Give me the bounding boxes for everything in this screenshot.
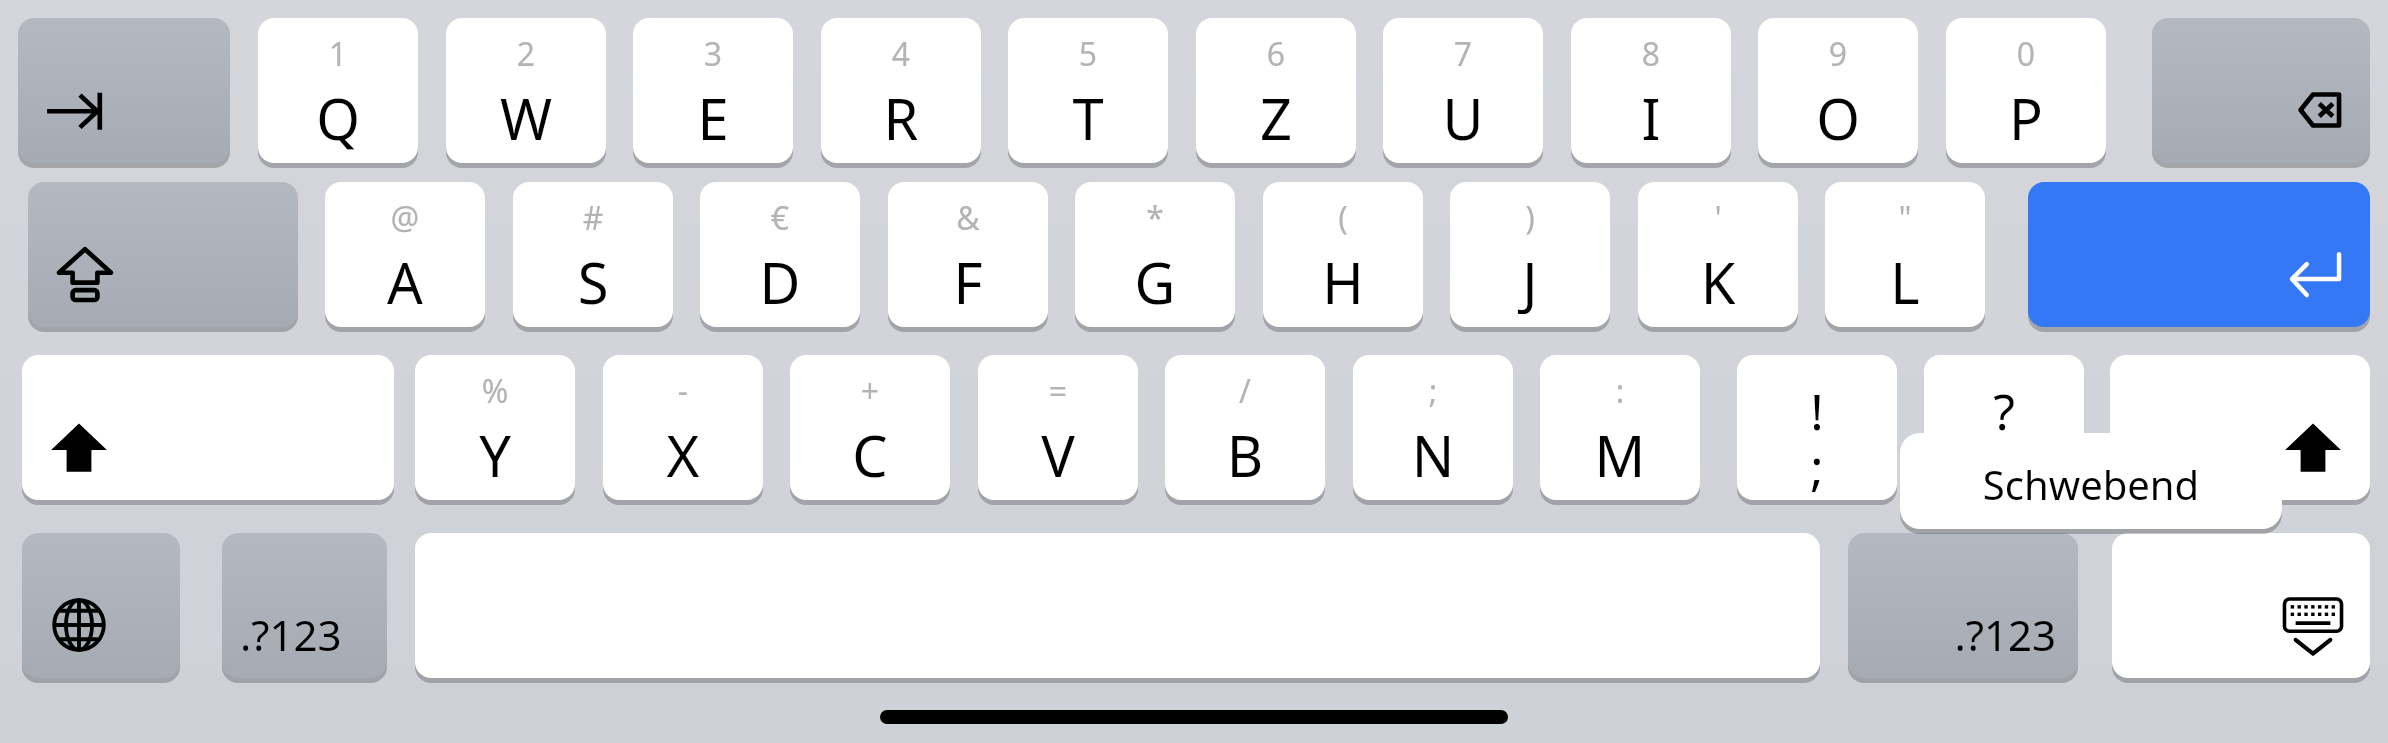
staticText: W (446, 80, 606, 150)
button[interactable]: % (415, 355, 575, 500)
staticText: J (1450, 244, 1610, 314)
button[interactable]: & (888, 182, 1048, 327)
staticText: ; (1353, 369, 1513, 409)
button[interactable]: Shift (2110, 355, 2370, 500)
staticText: + (790, 369, 950, 409)
button[interactable]: " (1825, 182, 1985, 327)
staticText: ' (1638, 196, 1798, 236)
button[interactable]: Schwebend (1900, 433, 2282, 529)
staticText: 9 (1758, 32, 1918, 72)
staticText: ; (1737, 433, 1897, 493)
staticText: & (888, 196, 1048, 236)
button[interactable]: 7 (1383, 18, 1543, 163)
staticText: 6 (1196, 32, 1356, 72)
button[interactable]: Backspace (2152, 18, 2370, 163)
button[interactable]: ( (1263, 182, 1423, 327)
button[interactable]: * (1075, 182, 1235, 327)
button[interactable]: .?123 (1848, 533, 2078, 678)
staticText: / (1165, 369, 1325, 409)
button[interactable]: 1 (258, 18, 418, 163)
button[interactable]: 0 (1946, 18, 2106, 163)
staticText: 0 (1946, 32, 2106, 72)
button[interactable]: 3 (633, 18, 793, 163)
button[interactable]: ? (1924, 355, 2084, 500)
staticText: M (1540, 417, 1700, 487)
button[interactable]: 9 (1758, 18, 1918, 163)
staticText: .?123 (240, 606, 387, 666)
staticText: T (1008, 80, 1168, 150)
staticText: @ (325, 196, 485, 236)
staticText: 8 (1571, 32, 1731, 72)
button[interactable]: 8 (1571, 18, 1731, 163)
staticText: 5 (1008, 32, 1168, 72)
staticText: ! (1737, 377, 1897, 437)
staticText: E (633, 80, 793, 150)
staticText: ) (1450, 196, 1610, 236)
staticText: C (790, 417, 950, 487)
staticText: .?123 (1848, 606, 2056, 666)
staticText: 4 (821, 32, 981, 72)
button[interactable]: .?123 (222, 533, 387, 678)
staticText: % (415, 369, 575, 409)
staticText: * (1075, 196, 1235, 236)
button[interactable]: - (603, 355, 763, 500)
staticText: U (1383, 80, 1543, 150)
staticText: Schwebend (1900, 457, 2282, 507)
button[interactable]: Return (2028, 182, 2370, 327)
staticText: Y (415, 417, 575, 487)
staticText: Q (258, 80, 418, 150)
button[interactable]: Hide keyboard (2112, 533, 2370, 678)
staticText: G (1075, 244, 1235, 314)
staticText: H (1263, 244, 1423, 314)
button[interactable]: : (1540, 355, 1700, 500)
staticText: N (1353, 417, 1513, 487)
staticText: K (1638, 244, 1798, 314)
button[interactable]: € (700, 182, 860, 327)
button[interactable]: ; (1353, 355, 1513, 500)
staticText: O (1758, 80, 1918, 150)
button[interactable]: Tab (18, 18, 230, 163)
button[interactable]: Next keyboard (22, 533, 180, 678)
button[interactable]: @ (325, 182, 485, 327)
staticText: - (603, 369, 763, 409)
button[interactable]: = (978, 355, 1138, 500)
button[interactable]: Shift (22, 355, 394, 500)
button[interactable]: + (790, 355, 950, 500)
staticText: F (888, 244, 1048, 314)
staticText: B (1165, 417, 1325, 487)
staticText: V (978, 417, 1138, 487)
staticText: S (513, 244, 673, 314)
staticText: # (513, 196, 673, 236)
staticText: € (700, 196, 860, 236)
button[interactable]: / (1165, 355, 1325, 500)
staticText: Z (1196, 80, 1356, 150)
button[interactable]: Caps lock (28, 182, 298, 327)
staticText: 7 (1383, 32, 1543, 72)
staticText: 3 (633, 32, 793, 72)
button[interactable]: ' (1638, 182, 1798, 327)
staticText: 1 (258, 32, 418, 72)
button[interactable]: ) (1450, 182, 1610, 327)
staticText: D (700, 244, 860, 314)
staticText: I (1571, 80, 1731, 150)
staticText: : (1540, 369, 1700, 409)
button[interactable]: 4 (821, 18, 981, 163)
staticText: ( (1263, 196, 1423, 236)
button[interactable]: ! (1737, 355, 1897, 500)
button[interactable]: 5 (1008, 18, 1168, 163)
button[interactable]: 6 (1196, 18, 1356, 163)
staticText: P (1946, 80, 2106, 150)
staticText: = (978, 369, 1138, 409)
staticText: A (325, 244, 485, 314)
staticText: R (821, 80, 981, 150)
staticText: L (1825, 244, 1985, 314)
button[interactable]: 2 (446, 18, 606, 163)
staticText: " (1825, 196, 1985, 236)
staticText: ? (1924, 377, 2084, 437)
staticText: 2 (446, 32, 606, 72)
button[interactable]: # (513, 182, 673, 327)
staticText: X (603, 417, 763, 487)
